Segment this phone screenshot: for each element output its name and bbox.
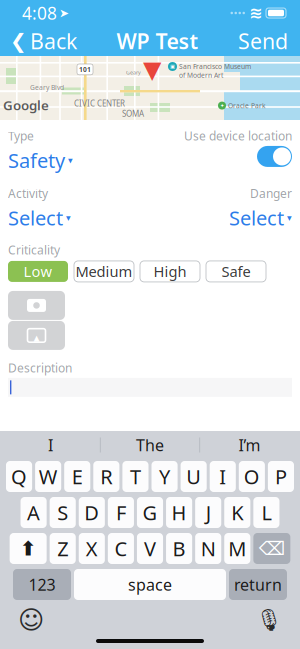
button[interactable]: ⬆ — [10, 533, 47, 564]
button[interactable]: J — [195, 497, 221, 528]
staticText: ▼ — [143, 56, 161, 83]
button[interactable]: The — [100, 431, 199, 459]
staticText: S — [57, 499, 68, 526]
button[interactable]: O — [239, 461, 265, 492]
staticText: ▾ — [66, 212, 71, 223]
staticText: U — [186, 463, 201, 490]
staticText: Safe — [221, 262, 250, 281]
staticText: San Francisco Museum — [179, 62, 251, 71]
button[interactable]: Q — [6, 461, 32, 492]
staticText: CIVIC CENTER — [74, 98, 125, 109]
staticText: Q — [11, 463, 27, 490]
staticText: Google — [3, 96, 49, 114]
staticText: B — [173, 535, 186, 562]
button[interactable]: M — [224, 533, 250, 564]
staticText: space — [128, 574, 172, 595]
staticText: Geary Blvd — [30, 83, 64, 92]
button[interactable]: R — [93, 461, 119, 492]
staticText: Description — [8, 360, 72, 376]
staticText: ❮ — [10, 30, 27, 52]
button[interactable]: S — [50, 497, 76, 528]
staticText: ▾ — [68, 155, 73, 165]
staticText: W — [39, 463, 58, 490]
button[interactable]: X — [79, 533, 105, 564]
button[interactable]: P — [268, 461, 294, 492]
staticText: 4:08 — [22, 1, 57, 24]
button[interactable]: E — [64, 461, 90, 492]
staticText: L — [261, 499, 271, 526]
staticText: ▾ — [287, 212, 292, 223]
staticText: The — [136, 434, 164, 456]
button[interactable]: G — [137, 497, 163, 528]
staticText: Activity — [8, 185, 48, 201]
button[interactable]: High — [140, 261, 200, 282]
button[interactable]: 123 — [13, 569, 71, 600]
button[interactable]: Choose photo — [8, 321, 65, 350]
staticText: Low — [23, 262, 52, 281]
button[interactable]: V — [137, 533, 163, 564]
staticText: P — [275, 463, 287, 490]
staticText: Danger — [250, 185, 292, 201]
staticText: 101 — [79, 65, 91, 74]
button[interactable]: W — [35, 461, 61, 492]
staticText: X — [86, 535, 98, 562]
button[interactable]: Select — [229, 202, 292, 233]
button[interactable]: space — [74, 569, 226, 600]
button[interactable]: Emoji keyboard — [14, 606, 48, 634]
button[interactable]: F — [108, 497, 134, 528]
button[interactable]: N — [195, 533, 221, 564]
staticText: ▲ — [33, 333, 39, 342]
button[interactable]: Send — [238, 21, 300, 61]
button[interactable]: T — [122, 461, 148, 492]
staticText: Send — [238, 27, 288, 55]
staticText: SOMA — [122, 108, 144, 119]
button[interactable]: Medium — [74, 261, 134, 282]
staticText: Safety — [8, 147, 65, 173]
button[interactable]: Low — [8, 261, 68, 282]
button[interactable]: B — [166, 533, 192, 564]
button[interactable]: Select — [8, 202, 71, 233]
button[interactable]: D — [79, 497, 105, 528]
button[interactable]: A — [21, 497, 47, 528]
staticText: R — [100, 463, 112, 490]
staticText: Geary — [126, 69, 141, 76]
button[interactable]: ⌫ — [253, 533, 290, 564]
button[interactable]: Dictation — [252, 606, 286, 634]
staticText: Back — [30, 27, 77, 55]
button[interactable]: Safe — [206, 261, 266, 282]
staticText: Z — [57, 535, 68, 562]
staticText: Criticality — [8, 242, 60, 258]
button[interactable]: Take photo — [8, 291, 65, 320]
button[interactable]: Y — [151, 461, 178, 492]
staticText: E — [72, 463, 83, 490]
button[interactable]: U — [181, 461, 207, 492]
staticText: K — [231, 499, 243, 526]
button[interactable]: I — [1, 431, 100, 459]
button[interactable]: K — [224, 497, 250, 528]
staticText: A — [27, 499, 40, 526]
staticText: H — [172, 499, 187, 526]
button[interactable]: Use device location — [257, 146, 292, 167]
button[interactable]: H — [166, 497, 192, 528]
staticText: ➤ — [59, 6, 69, 20]
button[interactable]: I — [210, 461, 236, 492]
button[interactable]: L — [253, 497, 279, 528]
staticText: F — [116, 499, 126, 526]
button[interactable]: ❮ — [0, 21, 77, 61]
staticText: High — [153, 262, 186, 281]
staticText: ≋ — [249, 4, 262, 22]
button[interactable]: C — [108, 533, 134, 564]
staticText: N — [201, 535, 216, 562]
staticText: J — [206, 499, 211, 526]
staticText: 🎙 — [255, 608, 282, 632]
button[interactable]: Safety — [8, 145, 73, 175]
staticText: V — [144, 535, 156, 562]
staticText: of Modern Art — [179, 71, 223, 80]
staticText: C — [114, 535, 127, 562]
button[interactable]: Z — [50, 533, 76, 564]
staticText: ▣ — [170, 63, 175, 70]
staticText: 123 — [28, 574, 55, 595]
button[interactable]: I’m — [200, 431, 299, 459]
button[interactable]: return — [229, 569, 287, 600]
staticText: return — [234, 574, 282, 595]
